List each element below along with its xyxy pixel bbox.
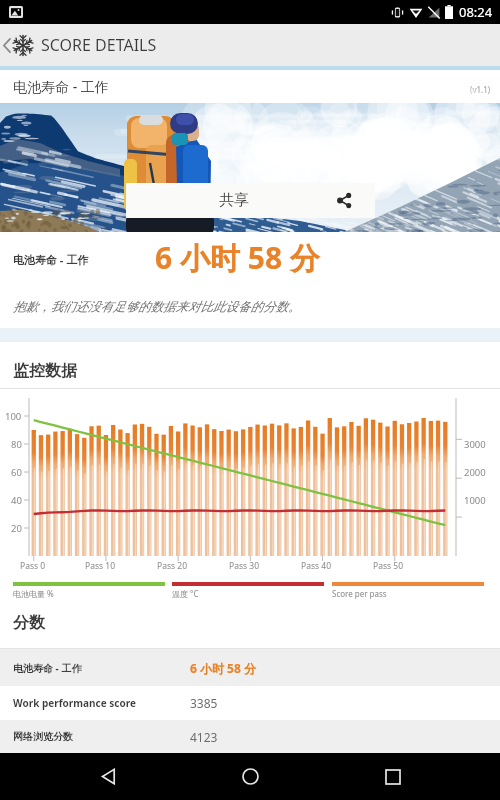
staticText: Score per pass <box>332 588 387 599</box>
staticText: (v1.1) <box>470 84 491 95</box>
staticText: 电池寿命 - 工作 <box>13 252 89 267</box>
staticText: 08:24 <box>459 3 493 21</box>
staticText: Pass 0 <box>20 560 46 572</box>
staticText: 80 <box>11 438 22 451</box>
staticText: 60 <box>11 466 22 479</box>
staticText: 100 <box>5 410 22 423</box>
button[interactable]: 共享 <box>126 183 375 218</box>
button[interactable]: 网络浏览分数 <box>0 720 500 753</box>
button[interactable]: Home <box>215 753 285 800</box>
staticText: 3000 <box>464 438 486 451</box>
staticText: SCORE DETAILS <box>41 34 157 56</box>
staticText: Pass 40 <box>301 560 331 572</box>
staticText: 网络浏览分数 <box>13 730 73 743</box>
staticText: 6 小时 58 分 <box>155 237 320 278</box>
staticText: 电池寿命 - 工作 <box>13 77 109 96</box>
staticText: 2000 <box>464 466 486 479</box>
staticText: 3385 <box>190 695 218 711</box>
staticText: Pass 20 <box>157 560 187 572</box>
button[interactable]: Recent apps <box>358 753 428 800</box>
staticText: 监控数据 <box>13 361 77 381</box>
button[interactable]: Back <box>0 24 157 66</box>
staticText: 温度 °C <box>172 588 199 599</box>
staticText: 6 小时 58 分 <box>190 660 256 676</box>
staticText: 40 <box>11 494 22 507</box>
staticText: 分数 <box>13 613 45 633</box>
staticText: 抱歉，我们还没有足够的数据来对比此设备的分数。 <box>13 299 301 315</box>
staticText: 1000 <box>464 494 486 507</box>
button[interactable]: 电池寿命 - 工作 <box>0 649 500 686</box>
staticText: 电池电量 % <box>13 588 54 599</box>
staticText: 20 <box>11 522 22 535</box>
staticText: Pass 30 <box>229 560 259 572</box>
button[interactable]: Back <box>73 753 143 800</box>
staticText: 4123 <box>190 729 218 745</box>
staticText: Pass 50 <box>373 560 403 572</box>
staticText: Pass 10 <box>85 560 115 572</box>
staticText: 共享 <box>219 191 249 210</box>
staticText: 电池寿命 - 工作 <box>13 661 82 675</box>
staticText: Work performance score <box>13 696 136 710</box>
button[interactable]: Work performance score <box>0 686 500 720</box>
